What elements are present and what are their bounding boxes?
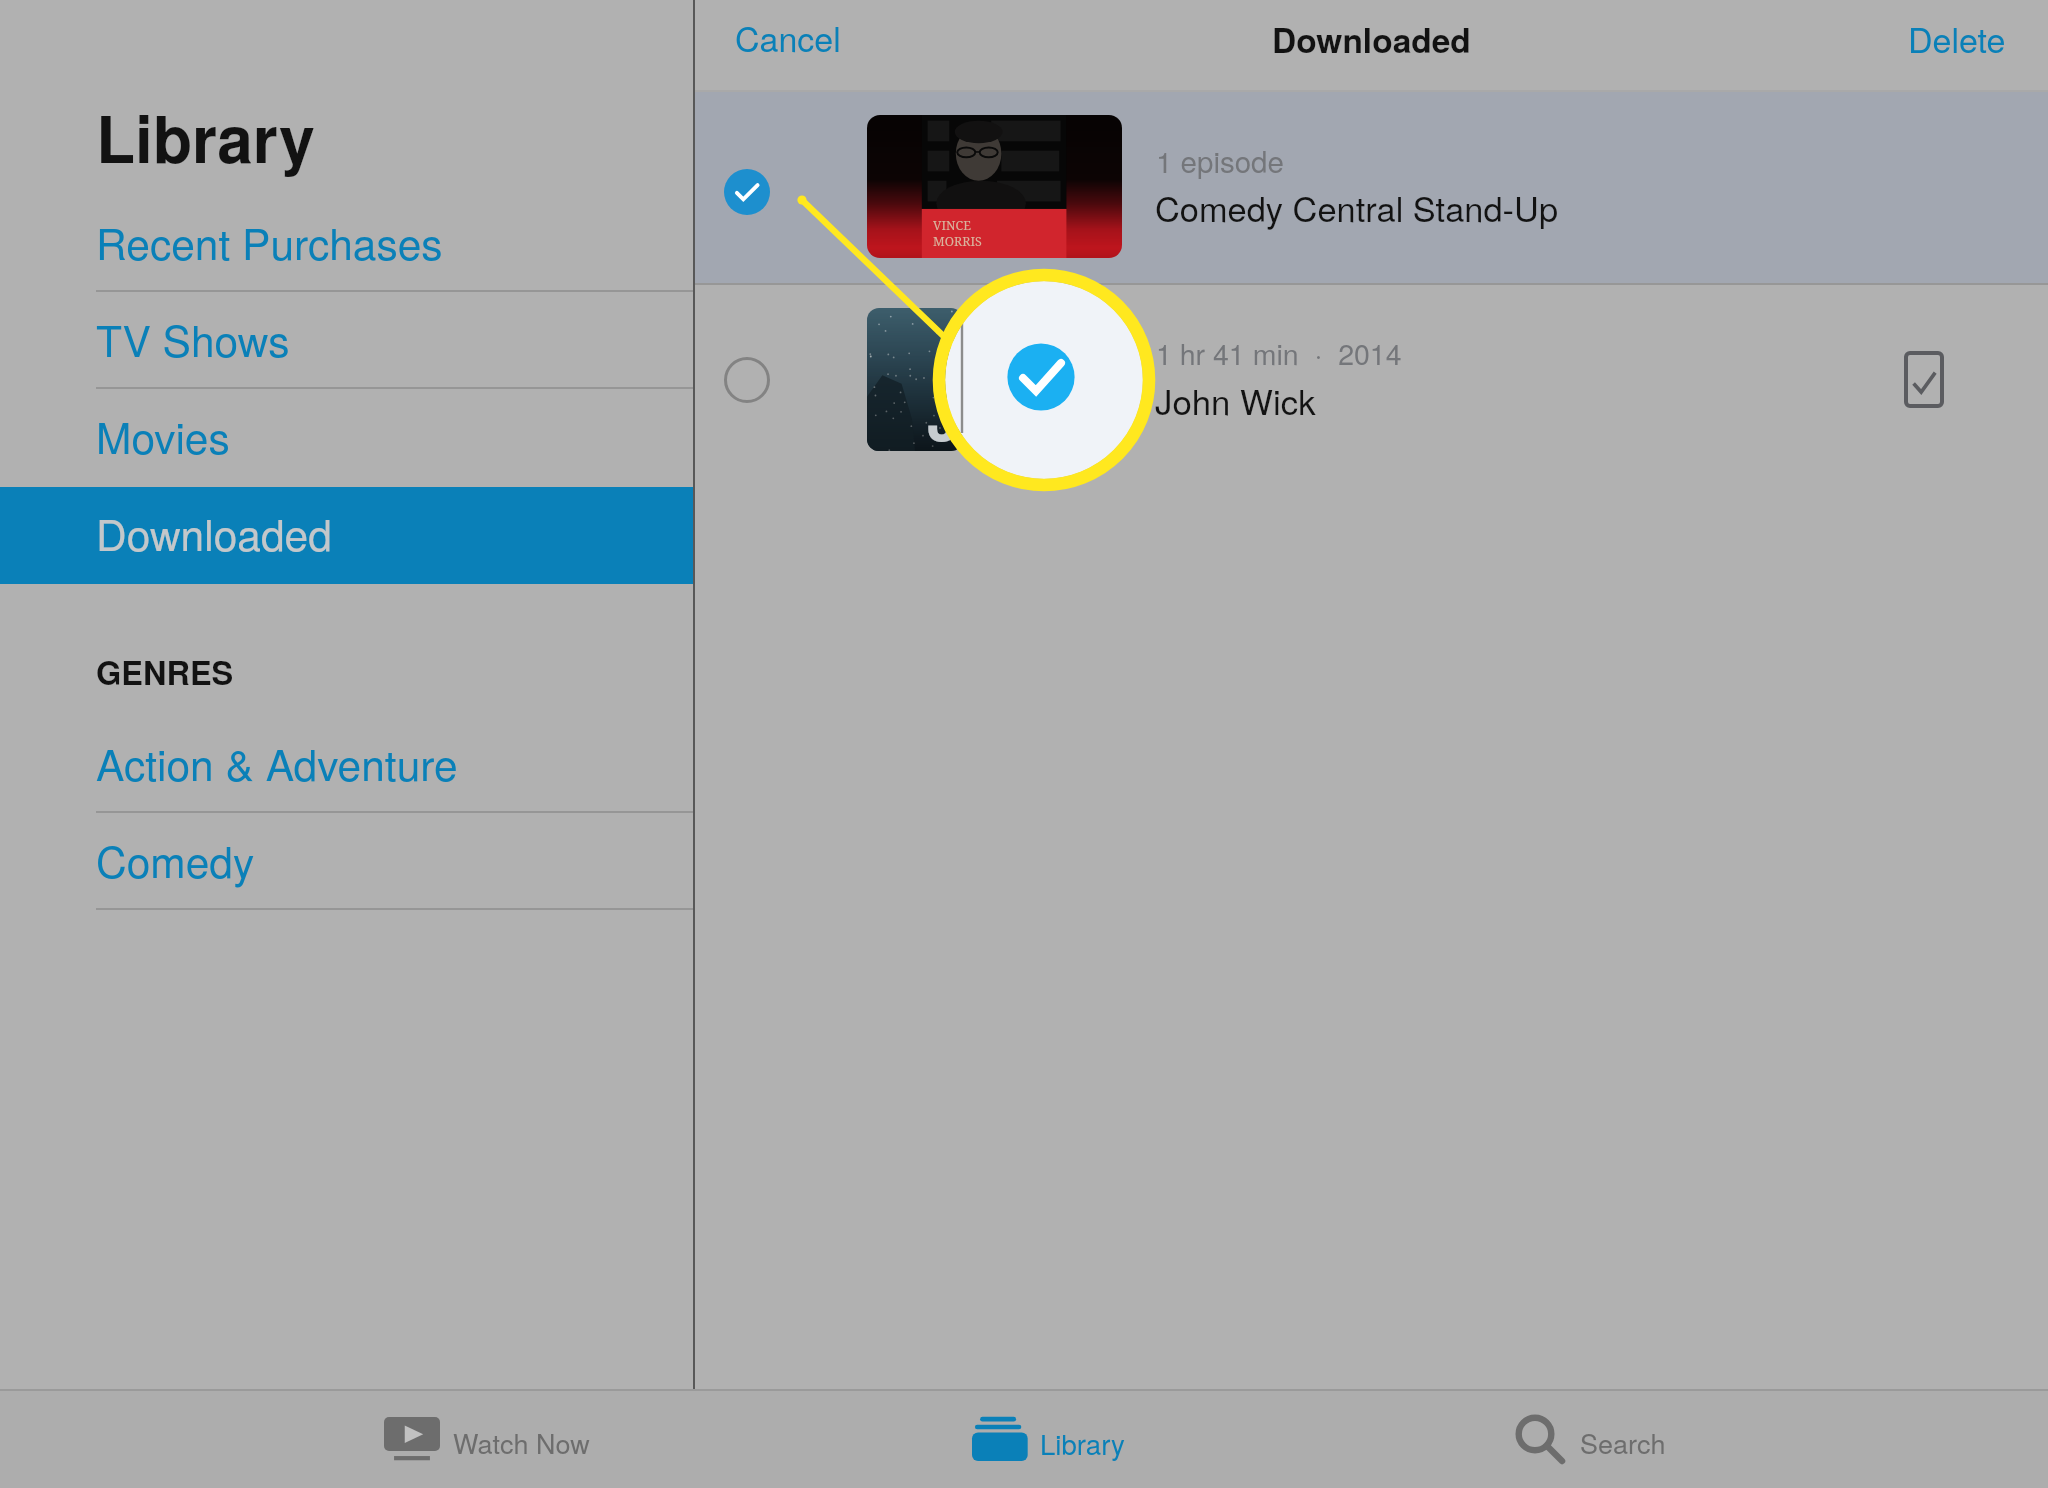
staticText: GENRES xyxy=(96,648,234,695)
button[interactable]: Not selected xyxy=(695,285,2048,476)
button[interactable]: Downloaded xyxy=(1904,351,1944,408)
staticText: Action & Adventure xyxy=(96,732,458,793)
staticText: VINCE MORRIS xyxy=(933,217,982,249)
staticText: Movies xyxy=(96,405,230,466)
button[interactable]: Comedy xyxy=(0,813,693,910)
button[interactable]: Selected xyxy=(695,92,2048,283)
staticText: TV Shows xyxy=(96,308,290,369)
button[interactable]: Search xyxy=(1450,1390,1770,1488)
staticText: Comedy xyxy=(96,829,255,890)
staticText: J xyxy=(927,376,960,451)
button[interactable]: Not selected xyxy=(724,357,770,403)
staticText: Recent Purchases xyxy=(96,211,443,272)
staticText: John Wick xyxy=(1155,375,1316,425)
staticText: Downloaded xyxy=(96,502,332,563)
staticText: Library xyxy=(96,91,315,183)
button[interactable]: Recent Purchases xyxy=(0,195,693,292)
button[interactable]: Delete xyxy=(1908,14,2006,63)
staticText: Search xyxy=(1580,1423,1666,1462)
button[interactable]: Selected xyxy=(724,169,770,215)
button[interactable]: Downloaded xyxy=(1272,15,1471,63)
button[interactable]: Movies xyxy=(0,389,693,486)
staticText: 1 episode xyxy=(1156,139,1284,181)
button[interactable]: TV Shows xyxy=(0,292,693,389)
button[interactable]: Watch Now xyxy=(300,1390,690,1488)
staticText: 1 hr 41 min · 2014 xyxy=(1156,332,1402,373)
staticText: Comedy Central Stand-Up xyxy=(1155,183,1559,232)
staticText: Watch Now xyxy=(453,1423,590,1462)
button[interactable]: Action & Adventure xyxy=(0,716,693,813)
button[interactable]: Downloaded xyxy=(0,487,693,584)
button[interactable]: Cancel xyxy=(735,13,841,62)
button[interactable]: Library xyxy=(900,1390,1220,1488)
staticText: Library xyxy=(1040,1423,1125,1463)
